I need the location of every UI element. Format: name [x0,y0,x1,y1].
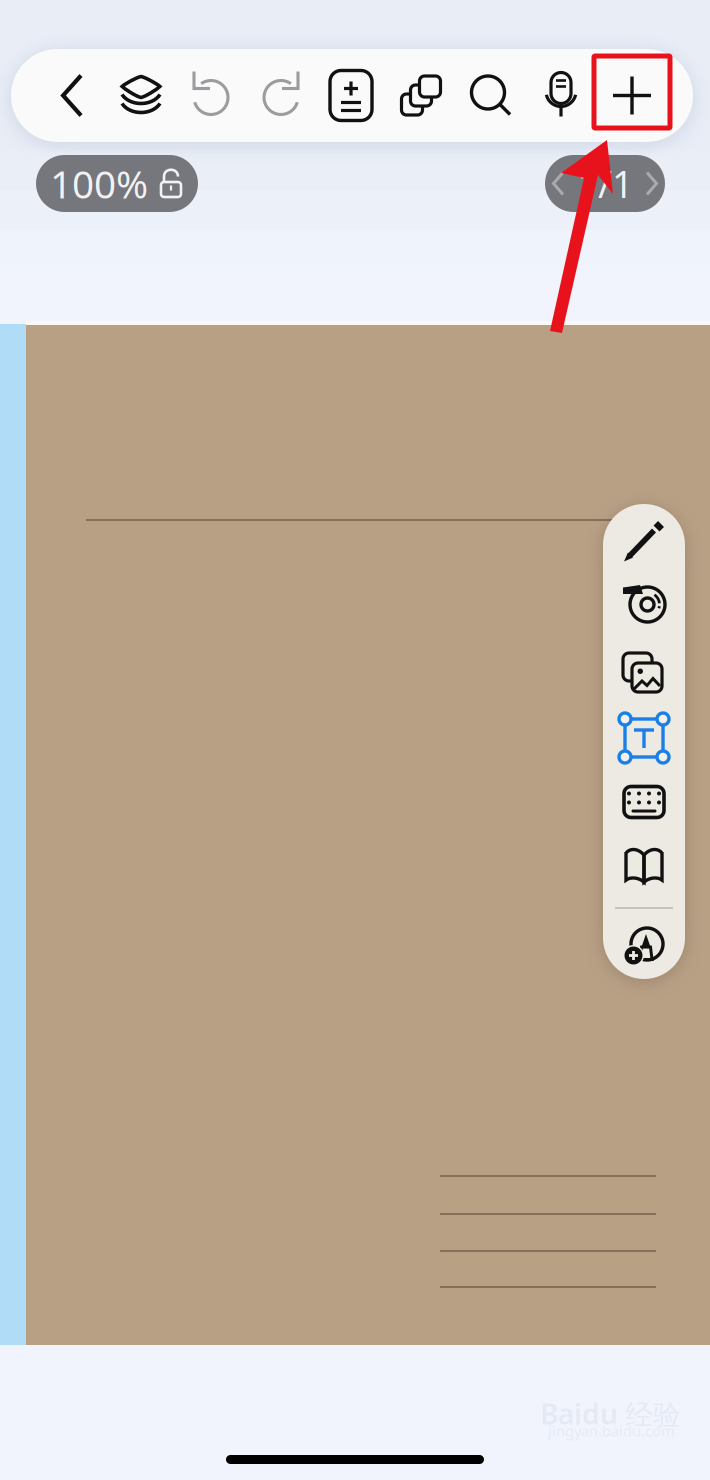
button[interactable]: Zoom settings [316,49,386,142]
button[interactable]: Add tool [603,918,685,984]
button[interactable]: Voice memo [526,49,596,142]
staticText: 1/1 [577,159,633,208]
button[interactable]: 1/1 [545,155,665,212]
button[interactable]: 100% [36,155,198,212]
button[interactable]: Undo [176,49,246,142]
button[interactable]: Redo [246,49,316,142]
button[interactable]: Insert image [603,634,685,700]
button[interactable]: Reading mode [603,832,685,898]
button[interactable]: Layers [106,49,176,142]
staticText: Baidu 经验 [540,1395,681,1432]
button[interactable]: Add [596,49,668,142]
staticText: jingyan.baidu.com [548,1421,675,1440]
button[interactable]: Shapes [386,49,456,142]
button[interactable]: Pen [603,499,685,568]
button[interactable]: Back [36,49,106,142]
staticText: 100% [50,158,148,209]
button[interactable]: Text box [603,700,685,766]
button[interactable]: Search [456,49,526,142]
button[interactable]: Keyboard [603,766,685,832]
button[interactable]: Tape [603,568,685,634]
